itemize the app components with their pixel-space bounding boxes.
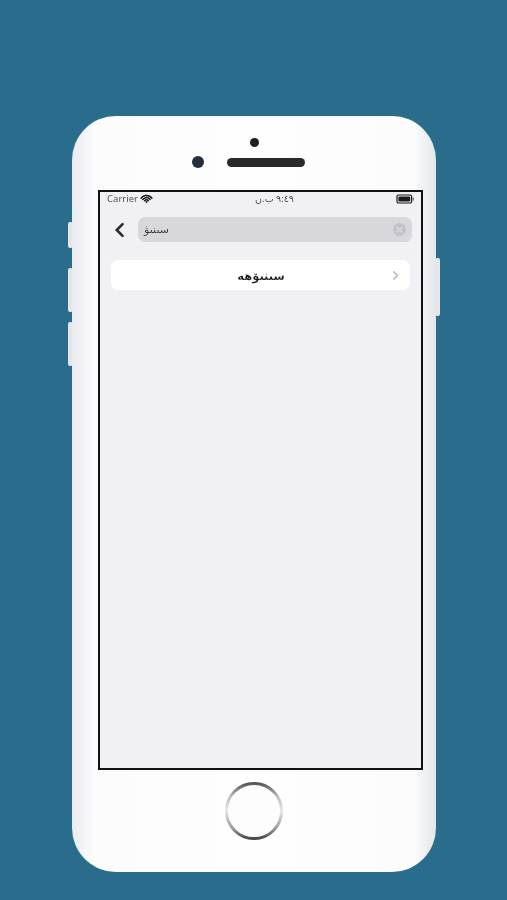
button[interactable]: سىنىۆھە xyxy=(111,260,410,290)
staticText: ٩:٤٩ ب.ن xyxy=(255,192,294,205)
staticText: سىنىۆھە xyxy=(237,269,285,282)
button[interactable]: Clear xyxy=(393,223,406,236)
staticText: Carrier xyxy=(107,192,138,205)
button[interactable]: Home xyxy=(225,782,283,840)
button[interactable]: Back xyxy=(105,215,135,245)
staticText: سىنىۋ xyxy=(144,223,169,236)
button[interactable]: سىنىۋ xyxy=(138,217,412,242)
